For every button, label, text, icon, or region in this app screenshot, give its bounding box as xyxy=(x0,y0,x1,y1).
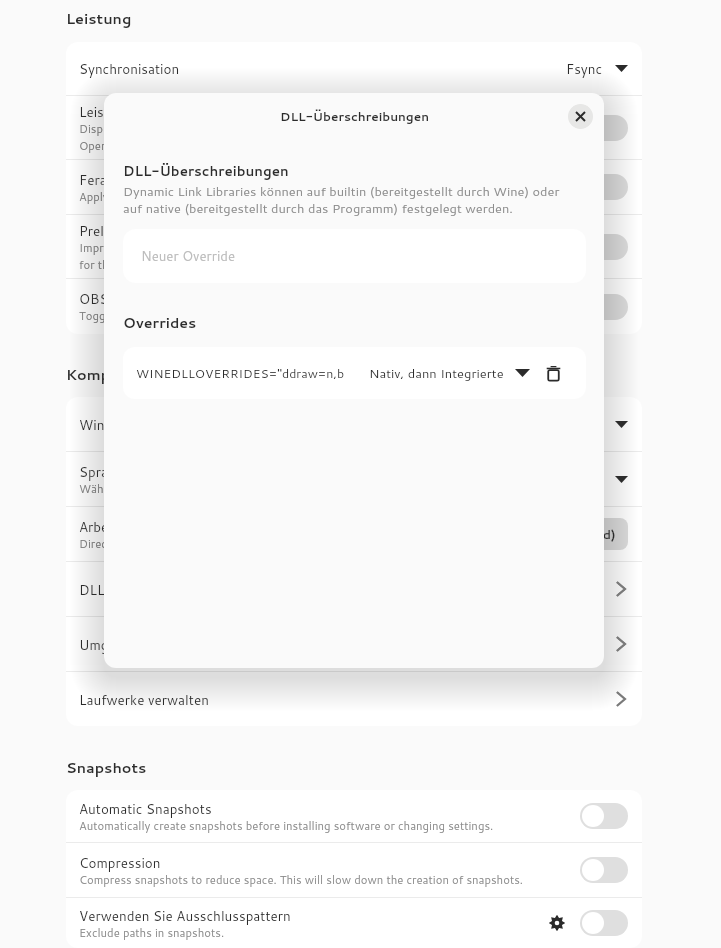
staticText: DLL-Überschreibungen xyxy=(123,161,289,180)
staticText: Compression xyxy=(79,853,161,872)
button[interactable]: Neuer Override xyxy=(123,229,586,283)
staticText: Display performance overlay in games (re… xyxy=(79,121,328,153)
staticText: Preload Vulkan shaders xyxy=(79,221,225,240)
staticText: Nativ, dann Integrierte xyxy=(369,364,504,382)
staticText: Wähle die Sprache des Bottles xyxy=(79,481,240,497)
button[interactable]: Compression xyxy=(66,843,642,897)
staticText: Snapshots xyxy=(66,757,147,777)
staticText: Improve performance by compiling shaders… xyxy=(79,240,305,272)
staticText: Verwenden Sie Ausschlusspattern xyxy=(79,906,291,925)
button[interactable]: DLL-Überschreibungen xyxy=(66,562,642,616)
button[interactable]: Leistungsmodus xyxy=(66,96,642,159)
button[interactable]: Toggle xyxy=(580,234,628,260)
button[interactable]: Toggle xyxy=(580,910,628,936)
staticText: Leistungsmodus xyxy=(79,102,181,121)
button[interactable]: Windows-Version xyxy=(66,397,642,451)
button[interactable]: Sprache xyxy=(66,452,642,506)
button[interactable]: Settings xyxy=(548,914,566,932)
button[interactable]: Open xyxy=(610,689,628,709)
staticText: Windows-Version xyxy=(79,415,194,434)
staticText: Feral GameMode xyxy=(79,170,186,189)
button[interactable]: Toggle xyxy=(580,294,628,320)
staticText: OBS Vkcapture xyxy=(79,289,175,308)
staticText: Toggle OBS Vulkan capture xyxy=(79,308,224,324)
button[interactable]: Nativ, dann Integrierte xyxy=(369,364,530,382)
staticText: Leistung xyxy=(66,8,132,28)
button[interactable]: Open xyxy=(610,579,628,599)
staticText: DLL-Überschreibungen xyxy=(280,108,429,125)
button[interactable]: Toggle xyxy=(580,803,628,829)
staticText: Sprache xyxy=(79,462,130,481)
button[interactable]: Toggle xyxy=(580,174,628,200)
staticText: Kompatibilität xyxy=(66,364,175,384)
button[interactable]: (Standard) xyxy=(534,518,628,550)
button[interactable]: Synchronisation xyxy=(66,42,642,95)
staticText: Arbeitsverzeichnis xyxy=(79,517,193,536)
staticText: WINEDLLOVERRIDES="ddraw=n,b xyxy=(136,364,345,382)
staticText: Exclude paths in snapshots. xyxy=(79,925,225,941)
button[interactable]: Toggle xyxy=(580,857,628,883)
button[interactable]: Feral GameMode xyxy=(66,160,642,214)
staticText: (Standard) xyxy=(546,525,616,543)
staticText: Dynamic Link Libraries können auf builti… xyxy=(123,182,560,217)
staticText: Apply GameMode optimisations xyxy=(79,189,246,205)
button[interactable]: Laufwerke verwalten xyxy=(66,672,642,726)
staticText: Fsync xyxy=(566,59,603,78)
button[interactable]: Verwenden Sie Ausschlusspattern xyxy=(66,898,642,948)
staticText: DLL-Überschreibungen xyxy=(79,580,226,599)
button[interactable]: Delete xyxy=(545,365,562,382)
button[interactable]: Arbeitsverzeichnis xyxy=(66,507,642,561)
staticText: Neuer Override xyxy=(141,247,235,266)
staticText: Directory for the bottle xyxy=(79,536,202,552)
staticText: Synchronisation xyxy=(79,59,180,78)
button[interactable]: Toggle xyxy=(580,115,628,141)
button[interactable]: Automatic Snapshots xyxy=(66,790,642,842)
staticText: Overrides xyxy=(123,312,197,332)
staticText: Compress snapshots to reduce space. This… xyxy=(79,872,523,888)
button[interactable]: Close xyxy=(568,104,593,129)
staticText: Laufwerke verwalten xyxy=(79,690,209,709)
button[interactable]: Open xyxy=(610,634,628,654)
staticText: Umgebungsvariablen xyxy=(79,635,209,654)
staticText: Automatically create snapshots before in… xyxy=(79,818,494,834)
button[interactable]: OBS Vkcapture xyxy=(66,279,642,334)
button[interactable]: Umgebungsvariablen xyxy=(66,617,642,671)
button[interactable]: Preload Vulkan shaders xyxy=(66,215,642,278)
staticText: Automatic Snapshots xyxy=(79,799,212,818)
